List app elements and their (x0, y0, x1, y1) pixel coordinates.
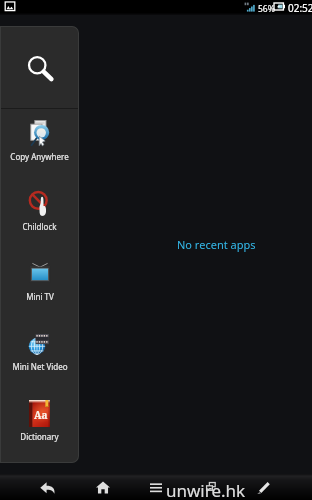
button[interactable]: Recent apps (201, 476, 221, 496)
staticText: No recent apps (177, 237, 256, 252)
button[interactable]: Mini TV (0, 249, 79, 319)
button[interactable]: Edit (250, 474, 276, 500)
button[interactable]: Childlock (0, 179, 79, 249)
staticText: 02:52 (288, 1, 312, 15)
button[interactable]: Mini Net Video (0, 319, 79, 389)
staticText: Childlock (22, 221, 57, 232)
staticText: Mini Net Video (12, 361, 68, 372)
button[interactable]: Home (90, 474, 116, 500)
staticText: Aa (34, 408, 48, 422)
staticText: unwire.hk (166, 479, 246, 500)
button[interactable]: Menu (143, 474, 169, 500)
button[interactable]: Copy Anywhere (0, 109, 79, 179)
staticText: Dictionary (20, 431, 59, 442)
button[interactable]: Aa (0, 389, 79, 459)
staticText: Mini TV (26, 291, 54, 302)
staticText: Copy Anywhere (10, 151, 69, 162)
staticText: 56% (258, 3, 275, 15)
button[interactable]: Back (34, 474, 60, 500)
button[interactable]: Search (0, 26, 79, 108)
